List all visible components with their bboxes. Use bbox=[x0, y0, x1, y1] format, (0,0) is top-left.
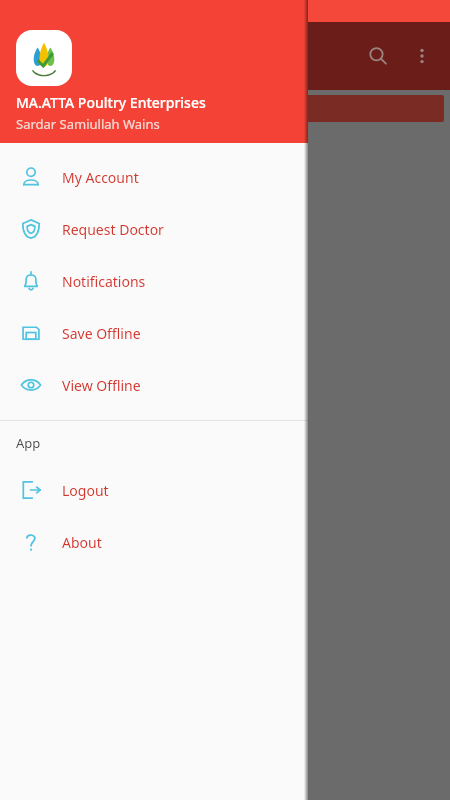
staticText: View Offline bbox=[62, 376, 141, 395]
button[interactable]: Notifications bbox=[0, 255, 308, 307]
staticText: END DATE bbox=[16, 100, 78, 118]
button[interactable]: Save Offline bbox=[0, 307, 308, 359]
button[interactable]: Logout bbox=[0, 464, 308, 516]
button[interactable]: More options bbox=[402, 36, 442, 76]
button[interactable]: My Account bbox=[0, 151, 308, 203]
button[interactable]: END DATE bbox=[6, 95, 444, 122]
staticText: Notifications bbox=[62, 272, 146, 291]
button[interactable]: Search bbox=[354, 32, 402, 80]
button[interactable]: About bbox=[0, 516, 308, 568]
staticText: App bbox=[16, 434, 41, 452]
button[interactable]: View Offline bbox=[0, 359, 308, 411]
staticText: Save Offline bbox=[62, 324, 141, 343]
staticText: Request Doctor bbox=[62, 220, 164, 239]
staticText: MA.ATTA Poultry Enterprises bbox=[16, 93, 206, 112]
staticText: My Account bbox=[62, 168, 139, 187]
staticText: Sardar Samiullah Wains bbox=[16, 115, 160, 133]
staticText: About bbox=[62, 533, 102, 552]
button[interactable]: Request Doctor bbox=[0, 203, 308, 255]
staticText: Logout bbox=[62, 481, 109, 500]
